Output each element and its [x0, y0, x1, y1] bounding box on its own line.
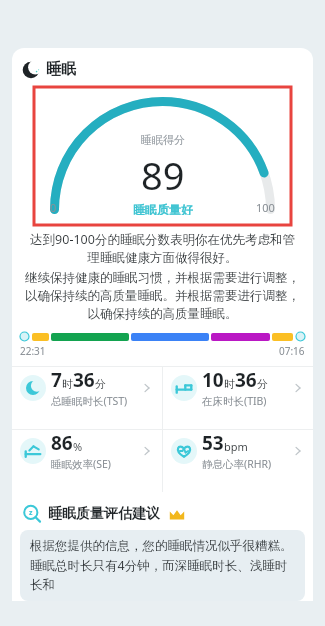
staticText: 时	[224, 377, 235, 391]
staticText: 睡眠得分	[141, 133, 185, 147]
staticText: 22:31	[20, 344, 46, 358]
button[interactable]: 睡眠	[12, 56, 313, 83]
staticText: 0	[50, 200, 57, 215]
button[interactable]: 7	[12, 367, 162, 408]
button[interactable]: 10	[163, 367, 313, 408]
staticText: 10	[202, 367, 224, 393]
staticText: 睡眠效率(SE)	[51, 457, 111, 471]
staticText: 86	[51, 430, 73, 456]
staticText: 89	[141, 149, 185, 201]
staticText: 07:16	[279, 344, 305, 358]
staticText: 36	[235, 367, 257, 393]
button[interactable]: 86	[12, 430, 162, 471]
staticText: 静息心率(RHR)	[202, 457, 272, 471]
staticText: 根据您提供的信息，您的睡眠情况似乎很糟糕。睡眠总时长只有4分钟，而深睡眠时长、浅…	[30, 538, 295, 593]
staticText: 睡眠质量好	[133, 202, 193, 215]
staticText: 100	[256, 200, 275, 215]
staticText: 53	[202, 430, 224, 456]
staticText: 继续保持健康的睡眠习惯，并根据需要进行调整，以确保持续的高质量睡眠。并根据需要进…	[24, 270, 301, 322]
staticText: 36	[73, 367, 95, 393]
staticText: %	[73, 439, 83, 454]
staticText: z	[29, 508, 33, 518]
staticText: 分	[257, 377, 268, 391]
staticText: 总睡眠时长(TST)	[51, 394, 128, 408]
staticText: 时	[62, 377, 73, 391]
button[interactable]: z	[12, 498, 313, 530]
staticText: 在床时长(TIB)	[202, 394, 267, 408]
staticText: 达到90-100分的睡眠分数表明你在优先考虑和管理睡眠健康方面做得很好。	[24, 231, 301, 266]
staticText: 睡眠质量评估建议	[48, 505, 160, 523]
staticText: bpm	[224, 439, 248, 454]
staticText: 睡眠	[46, 60, 76, 79]
button[interactable]: 53	[163, 430, 313, 471]
staticText: 7	[51, 367, 62, 393]
staticText: 分	[95, 377, 106, 391]
